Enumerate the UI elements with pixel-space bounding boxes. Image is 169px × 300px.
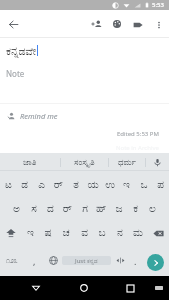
- button[interactable]: ಮ: [129, 221, 147, 245]
- button[interactable]: Enter: [147, 254, 164, 271]
- staticText: ಡ: [21, 180, 28, 191]
- staticText: ಎ: [38, 180, 45, 191]
- button[interactable]: Change language: [45, 245, 61, 276]
- button[interactable]: ಯ: [84, 173, 101, 197]
- staticText: Remind me: [20, 111, 58, 121]
- button[interactable]: ಎ: [33, 173, 50, 197]
- staticText: ಕ: [133, 204, 138, 215]
- button[interactable]: ,: [24, 245, 45, 276]
- button[interactable]: ಜ: [110, 197, 127, 221]
- button[interactable]: ರ್: [50, 173, 67, 197]
- staticText: ಯ: [87, 180, 99, 191]
- staticText: ಸ: [31, 204, 37, 215]
- staticText: ರ್: [54, 180, 63, 191]
- button[interactable]: ವ: [75, 221, 93, 245]
- button[interactable]: Home: [74, 278, 94, 298]
- staticText: ರ್: [63, 204, 72, 215]
- button[interactable]: ಡ: [16, 173, 33, 197]
- staticText: ಗ: [82, 204, 88, 215]
- button[interactable]: Just ಕನ್ನಡ: [62, 256, 111, 265]
- button[interactable]: Navigate up: [3, 14, 23, 34]
- staticText: 5:53: [152, 1, 164, 9]
- button[interactable]: Shift: [0, 221, 22, 245]
- staticText: ಟ: [5, 180, 12, 191]
- staticText: ತ: [73, 180, 79, 191]
- staticText: ಇ: [27, 228, 34, 239]
- button[interactable]: Cursor keys: [112, 245, 128, 276]
- button[interactable]: ಅ: [8, 197, 25, 221]
- button[interactable]: ಚ: [57, 221, 75, 245]
- staticText: ಜ: [115, 204, 123, 215]
- staticText: ಕನ್ನಡವೇ: [6, 46, 37, 57]
- button[interactable]: ಲ: [144, 197, 161, 221]
- staticText: ೧೨೩: [6, 257, 18, 264]
- button[interactable]: ಇ: [118, 173, 135, 197]
- staticText: ,: [33, 255, 36, 267]
- staticText: Note: [6, 68, 25, 79]
- button[interactable]: ಗ: [76, 197, 93, 221]
- staticText: ಷ: [44, 228, 52, 239]
- button[interactable]: ೧೨೩: [0, 245, 24, 276]
- button[interactable]: Change colour: [107, 14, 127, 34]
- button[interactable]: Recent apps: [120, 278, 140, 298]
- staticText: ನ: [117, 228, 123, 239]
- staticText: ಪ: [157, 180, 164, 191]
- button[interactable]: ರ್: [59, 197, 76, 221]
- staticText: ಉ: [105, 180, 115, 191]
- button[interactable]: Remind me: [5, 110, 60, 122]
- button[interactable]: ಸ: [25, 197, 42, 221]
- button[interactable]: ಒ: [135, 173, 152, 197]
- button[interactable]: ಸಂಸ್ಕೃತಿ: [61, 153, 108, 171]
- staticText: ಜಾತಿ: [23, 158, 37, 167]
- button[interactable]: ಉ: [101, 173, 118, 197]
- staticText: ಚ: [62, 228, 70, 239]
- staticText: ಧರ್ಮ: [118, 158, 136, 167]
- button[interactable]: ಕ: [127, 197, 144, 221]
- button[interactable]: ಹ್: [93, 197, 110, 221]
- button[interactable]: ಪ: [152, 173, 169, 197]
- button[interactable]: ಟ: [0, 173, 16, 197]
- staticText: ಒ: [140, 180, 148, 191]
- button[interactable]: ಜಾತಿ: [0, 153, 60, 171]
- button[interactable]: ಕನ್ನಡವೇ: [0, 45, 169, 57]
- staticText: ವ: [81, 228, 88, 239]
- button[interactable]: ಧರ್ಮ: [109, 153, 145, 171]
- staticText: Just ಕನ್ನಡ: [75, 257, 98, 265]
- staticText: ದ: [47, 204, 54, 215]
- staticText: Note in Archive: [116, 144, 159, 152]
- button[interactable]: Note: [0, 68, 169, 79]
- button[interactable]: ದ: [42, 197, 59, 221]
- button[interactable]: .: [128, 245, 142, 276]
- staticText: ಲ: [149, 204, 156, 215]
- staticText: ಹ್: [96, 204, 107, 215]
- button[interactable]: Voice input: [146, 153, 169, 171]
- button[interactable]: Add collaborator: [87, 14, 107, 34]
- button[interactable]: Label: [127, 14, 148, 35]
- button[interactable]: Backspace: [147, 221, 169, 245]
- button[interactable]: ಬ: [93, 221, 111, 245]
- button[interactable]: Back: [26, 278, 46, 298]
- button[interactable]: ನ: [111, 221, 129, 245]
- button[interactable]: ಇ: [22, 221, 39, 245]
- staticText: ಮ: [133, 228, 143, 239]
- staticText: Edited 5:53 PM: [117, 130, 159, 138]
- staticText: ಸಂಸ್ಕೃತಿ: [74, 158, 95, 167]
- button[interactable]: Hide keyboard: [149, 278, 169, 298]
- button[interactable]: ತ: [67, 173, 84, 197]
- button[interactable]: More options: [148, 14, 169, 35]
- staticText: ಬ: [98, 228, 106, 239]
- button[interactable]: ಷ: [39, 221, 57, 245]
- staticText: ಇ: [123, 180, 130, 191]
- staticText: ಅ: [13, 204, 20, 215]
- staticText: .: [134, 255, 137, 267]
